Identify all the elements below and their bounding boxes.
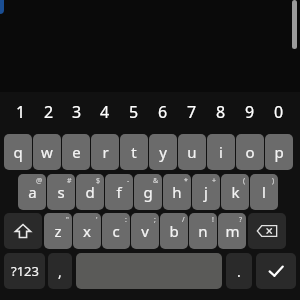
button[interactable]: 6 — [148, 97, 177, 127]
staticText: ( — [243, 176, 246, 186]
button[interactable]: s — [47, 174, 75, 210]
staticText: g — [143, 182, 153, 202]
staticText: n — [198, 221, 208, 241]
staticText: i — [219, 142, 223, 162]
staticText: 8 — [216, 101, 226, 123]
button[interactable]: 5 — [119, 97, 148, 127]
staticText: 7 — [187, 101, 197, 123]
staticText: ' — [96, 215, 98, 225]
staticText: e — [72, 142, 81, 162]
staticText: + — [212, 176, 217, 186]
staticText: 2 — [44, 101, 54, 123]
staticText: 6 — [158, 101, 168, 123]
staticText: 5 — [129, 101, 139, 123]
staticText: 9 — [245, 101, 255, 123]
button[interactable]: Shift — [4, 213, 42, 249]
button[interactable]: 8 — [206, 97, 235, 127]
button[interactable]: p — [265, 134, 293, 170]
button[interactable]: 0 — [264, 97, 293, 127]
staticText: 3 — [72, 101, 82, 123]
button[interactable]: j — [192, 174, 220, 210]
staticText: s — [57, 182, 65, 202]
staticText: @ — [36, 176, 43, 186]
button[interactable]: h — [163, 174, 191, 210]
button[interactable]: Space — [76, 253, 222, 289]
button[interactable]: Enter — [256, 253, 296, 289]
staticText: & — [153, 176, 159, 186]
button[interactable]: 2 — [35, 97, 63, 127]
button[interactable]: 3 — [63, 97, 91, 127]
button[interactable]: y — [149, 134, 177, 170]
staticText: 0 — [274, 101, 284, 123]
staticText: # — [67, 176, 72, 186]
staticText: r — [102, 142, 109, 162]
staticText: ) — [272, 176, 275, 186]
staticText: c — [112, 221, 120, 241]
button[interactable]: 9 — [235, 97, 264, 127]
staticText: ; — [154, 215, 156, 225]
staticText: / — [182, 215, 185, 225]
staticText: l — [262, 182, 266, 202]
staticText: w — [41, 142, 53, 162]
button[interactable]: d — [76, 174, 104, 210]
button[interactable]: 7 — [177, 97, 206, 127]
button[interactable]: q — [4, 134, 32, 170]
staticText: 4 — [100, 101, 110, 123]
staticText: j — [204, 182, 208, 202]
staticText: a — [28, 182, 37, 202]
button[interactable]: Backspace — [248, 213, 286, 249]
staticText: d — [85, 182, 95, 202]
staticText: f — [116, 182, 122, 202]
staticText: p — [274, 142, 284, 162]
staticText: t — [131, 142, 137, 162]
button[interactable]: r — [91, 134, 119, 170]
button[interactable]: b — [160, 213, 188, 249]
button[interactable]: 1 — [7, 97, 35, 127]
staticText: m — [225, 221, 240, 241]
staticText: 1 — [16, 101, 26, 123]
button[interactable]: i — [207, 134, 235, 170]
staticText: : — [125, 215, 127, 225]
button[interactable]: t — [120, 134, 148, 170]
staticText: - — [127, 176, 130, 186]
button[interactable]: w — [33, 134, 61, 170]
button[interactable]: k — [221, 174, 249, 210]
staticText: v — [141, 221, 149, 241]
button[interactable]: a — [18, 174, 46, 210]
staticText: * — [184, 176, 188, 186]
staticText: . — [237, 262, 241, 281]
staticText: $ — [96, 176, 101, 186]
button[interactable]: e — [62, 134, 90, 170]
staticText: o — [245, 142, 255, 162]
staticText: , — [58, 262, 62, 281]
staticText: " — [66, 215, 69, 225]
staticText: k — [231, 182, 240, 202]
staticText: y — [159, 142, 167, 162]
button[interactable]: ?123 — [4, 253, 45, 289]
button[interactable]: v — [131, 213, 159, 249]
staticText: u — [187, 142, 197, 162]
button[interactable]: c — [102, 213, 130, 249]
button[interactable]: m — [218, 213, 246, 249]
button[interactable]: u — [178, 134, 206, 170]
button[interactable]: f — [105, 174, 133, 210]
button[interactable]: x — [73, 213, 101, 249]
button[interactable]: l — [250, 174, 278, 210]
staticText: b — [169, 221, 179, 241]
button[interactable]: , — [48, 253, 72, 289]
staticText: z — [54, 221, 62, 241]
button[interactable]: . — [226, 253, 252, 289]
staticText: ? — [239, 215, 243, 225]
staticText: h — [172, 182, 182, 202]
staticText: ! — [212, 215, 214, 225]
staticText: x — [83, 221, 91, 241]
staticText: q — [13, 142, 23, 162]
button[interactable]: z — [44, 213, 72, 249]
button[interactable]: g — [134, 174, 162, 210]
staticText: ?123 — [11, 262, 39, 280]
button[interactable]: n — [189, 213, 217, 249]
button[interactable]: 4 — [91, 97, 119, 127]
button[interactable]: o — [236, 134, 264, 170]
